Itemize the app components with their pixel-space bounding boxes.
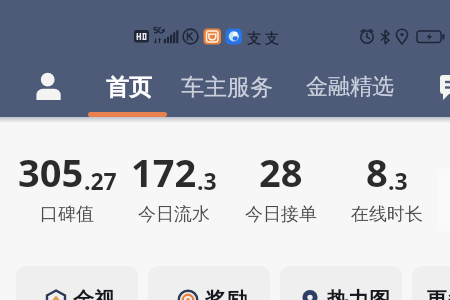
button[interactable]: 金视 <box>16 266 138 300</box>
staticText: 172 <box>131 146 197 198</box>
staticText: 支 支 <box>247 28 279 47</box>
button[interactable]: 305 <box>12 146 122 221</box>
staticText: 在线时长 <box>351 203 423 226</box>
button[interactable]: 热力图 <box>280 266 402 300</box>
staticText: 口碑值 <box>40 203 94 226</box>
staticText: 金视 <box>73 287 115 300</box>
button[interactable]: 28 <box>226 146 336 221</box>
button[interactable]: 首页 <box>106 73 152 102</box>
staticText: 奖励 <box>205 287 247 300</box>
staticText: 28 <box>259 146 303 198</box>
staticText: 热力图 <box>327 287 390 300</box>
button[interactable]: 更多 <box>412 266 450 300</box>
button[interactable]: 车主服务 <box>181 73 273 102</box>
staticText: .3 <box>388 165 408 196</box>
button[interactable]: 奖励 <box>148 266 270 300</box>
staticText: .3 <box>197 165 217 196</box>
button[interactable]: 8 <box>332 146 442 221</box>
staticText: 车主服务 <box>181 73 273 102</box>
staticText: 今日接单 <box>245 203 317 226</box>
staticText: 8 <box>366 146 388 198</box>
staticText: 305 <box>18 146 84 198</box>
button[interactable]: 172 <box>119 146 229 221</box>
staticText: 金融精选 <box>306 73 394 101</box>
button[interactable]: Profile <box>34 70 64 102</box>
button[interactable]: 金融精选 <box>306 73 394 101</box>
staticText: 首页 <box>106 73 152 102</box>
button[interactable]: Messages <box>439 75 450 101</box>
staticText: 更多 <box>426 287 450 300</box>
staticText: 今日流水 <box>138 203 210 226</box>
staticText: .27 <box>84 165 117 196</box>
